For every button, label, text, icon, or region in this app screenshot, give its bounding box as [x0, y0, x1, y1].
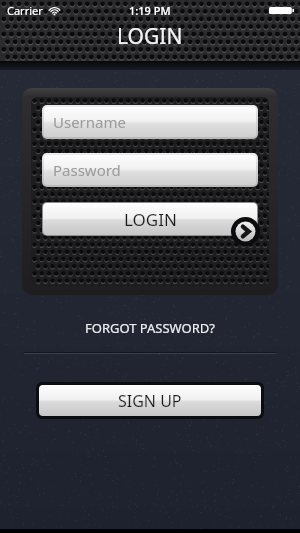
staticText: Password: [53, 160, 121, 180]
staticText: LOGIN: [117, 22, 183, 51]
staticText: Username: [53, 112, 126, 132]
staticText: SIGN UP: [118, 390, 182, 412]
button[interactable]: FORGOT PASSWORD?: [0, 312, 300, 344]
button[interactable]: Username: [44, 107, 256, 137]
staticText: FORGOT PASSWORD?: [85, 319, 215, 337]
button[interactable]: Password: [44, 155, 256, 185]
button[interactable]: SIGN UP: [39, 385, 261, 416]
button[interactable]: Submit login: [231, 217, 260, 246]
button[interactable]: LOGIN: [43, 203, 257, 235]
staticText: 1:19 PM: [129, 3, 171, 18]
staticText: Carrier: [7, 3, 43, 18]
staticText: LOGIN: [124, 208, 177, 231]
